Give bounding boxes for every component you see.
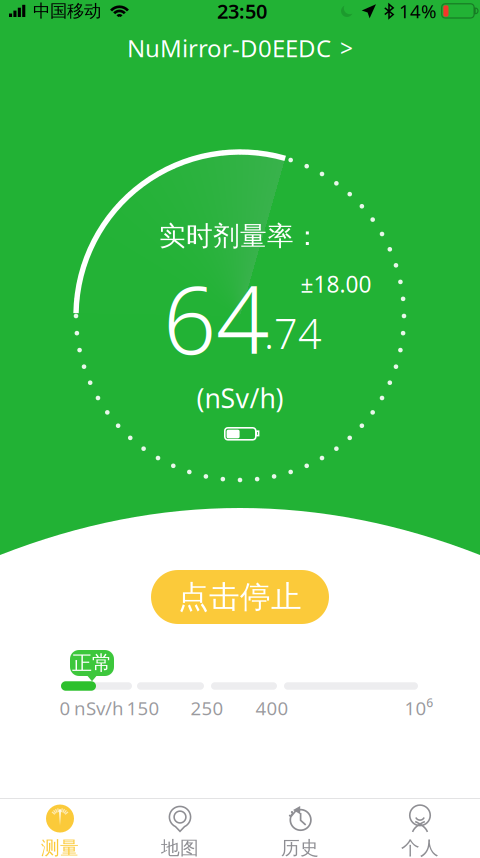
staticText: 正常 [72, 651, 112, 675]
staticText: nSv/h [74, 696, 124, 720]
button[interactable]: 个人 [360, 795, 480, 858]
staticText: .74 [264, 306, 322, 360]
staticText: 个人 [401, 836, 439, 858]
staticText: > [340, 33, 353, 63]
staticText: 14% [399, 0, 437, 23]
button[interactable]: 历史 [240, 795, 360, 858]
staticText: 0 [59, 696, 70, 720]
staticText: (nSv/h) [196, 380, 283, 416]
staticText: 250 [190, 696, 223, 720]
button[interactable]: 测量 [0, 795, 120, 858]
staticText: 测量 [41, 836, 79, 858]
button[interactable]: 地图 [120, 795, 240, 858]
staticText: NuMirror-D0EEDC [127, 32, 331, 64]
staticText: 64 [163, 256, 269, 380]
button[interactable]: 点击停止 [151, 570, 329, 624]
staticText: 地图 [161, 836, 199, 858]
staticText: 中国移动 [33, 0, 101, 22]
button[interactable]: NuMirror-D0EEDC [0, 22, 480, 74]
staticText: ±18.00 [300, 269, 371, 299]
staticText: 400 [255, 696, 288, 720]
staticText: 10⁶ [404, 696, 433, 720]
staticText: 历史 [281, 836, 319, 858]
staticText: 实时剂量率： [159, 220, 321, 252]
staticText: 150 [126, 696, 159, 720]
staticText: 23:50 [217, 0, 267, 24]
staticText: 点击停止 [178, 578, 302, 616]
